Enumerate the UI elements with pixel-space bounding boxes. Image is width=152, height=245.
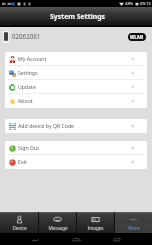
staticText: Images <box>87 225 104 231</box>
staticText: Update <box>18 83 36 90</box>
button[interactable]: WLAN <box>128 33 146 41</box>
staticText: System Settings <box>50 12 106 21</box>
button[interactable]: Device <box>0 212 38 233</box>
staticText: 02062061 <box>12 32 41 40</box>
staticText: Add device by QR Code <box>18 122 75 129</box>
button[interactable]: Settings <box>5 66 147 80</box>
button[interactable]: My Account <box>5 52 147 66</box>
staticText: Sign Out <box>18 144 40 151</box>
button[interactable]: Recents <box>109 233 125 245</box>
button[interactable]: More <box>115 212 152 233</box>
staticText: Settings <box>18 69 38 76</box>
button[interactable]: Exit <box>5 155 147 169</box>
staticText: Message <box>48 225 68 231</box>
button[interactable]: Message <box>39 212 76 233</box>
staticText: Device <box>12 225 27 231</box>
staticText: About <box>18 97 33 104</box>
staticText: My Account <box>18 55 47 62</box>
button[interactable]: Back <box>27 233 43 245</box>
button[interactable]: Update <box>5 80 147 94</box>
button[interactable]: Images <box>77 212 114 233</box>
staticText: 48% <box>125 1 134 7</box>
staticText: More <box>128 225 140 231</box>
button[interactable]: Sign Out <box>5 141 147 155</box>
staticText: Exit <box>18 158 27 165</box>
button[interactable]: About <box>5 94 147 108</box>
staticText: WLAN <box>130 34 144 40</box>
staticText: 09:13 <box>140 1 151 7</box>
button[interactable]: Add device by QR Code <box>5 119 147 133</box>
button[interactable]: Home <box>68 233 84 245</box>
